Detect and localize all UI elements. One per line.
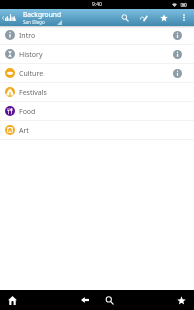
button[interactable]: Home xyxy=(0,290,24,310)
button[interactable]: Art xyxy=(0,121,194,140)
staticText: 9:40 xyxy=(92,1,102,8)
staticText: Background xyxy=(23,10,62,19)
button[interactable]: Festivals xyxy=(0,83,194,102)
staticText: Culture xyxy=(19,69,44,79)
button[interactable]: Search xyxy=(115,9,134,26)
staticText: Festivals xyxy=(19,88,47,98)
button[interactable]: Back xyxy=(73,290,96,310)
staticText: History xyxy=(19,50,43,60)
staticText: Art xyxy=(19,126,29,136)
button[interactable]: Search xyxy=(96,290,122,310)
button[interactable]: Culture xyxy=(0,64,194,83)
staticText: Food xyxy=(19,107,36,117)
button[interactable]: More options xyxy=(174,9,194,26)
staticText: Intro xyxy=(19,31,36,41)
button[interactable]: Food xyxy=(0,102,194,121)
button[interactable]: Intro xyxy=(0,26,194,45)
staticText: San Diego xyxy=(23,19,45,25)
button[interactable]: Edit xyxy=(134,9,153,26)
button[interactable]: Navigate up xyxy=(0,9,16,26)
button[interactable]: Favourite xyxy=(153,9,174,26)
button[interactable]: History xyxy=(0,45,194,64)
button[interactable]: Favourites xyxy=(169,290,194,310)
